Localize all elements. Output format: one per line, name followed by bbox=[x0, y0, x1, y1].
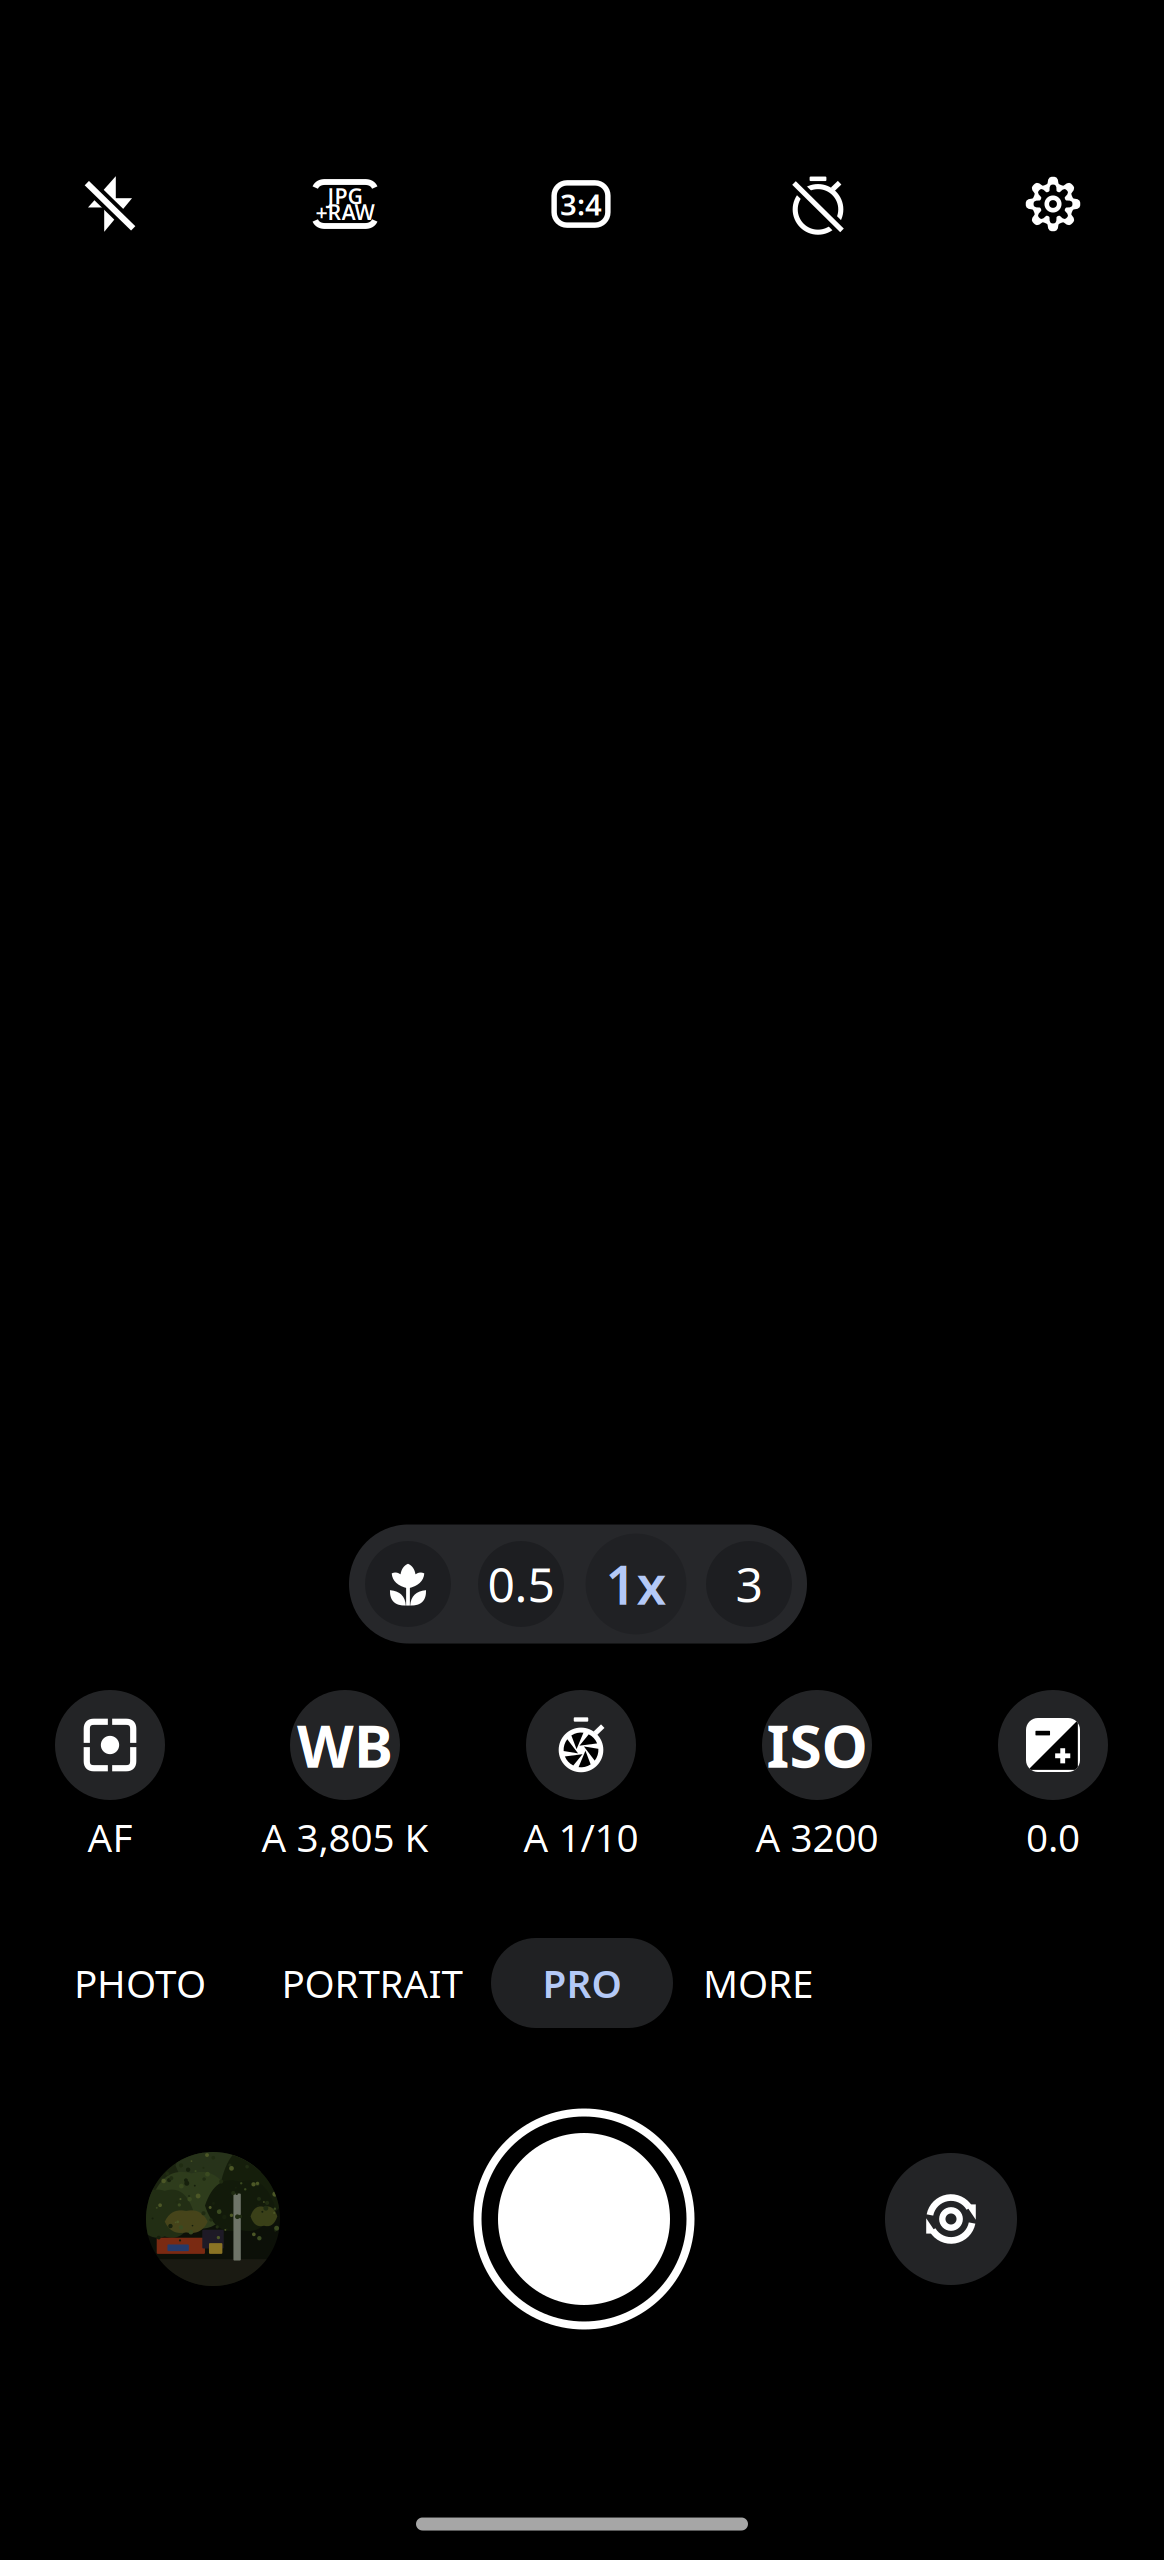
button[interactable]: Shutter bbox=[477, 2112, 690, 2325]
staticText: WB bbox=[297, 1706, 393, 1784]
staticText: 0.5 bbox=[487, 1552, 554, 1616]
button[interactable]: Timer off bbox=[758, 149, 878, 259]
staticText: 3 bbox=[735, 1552, 762, 1616]
button[interactable]: Last photo bbox=[146, 2152, 280, 2286]
button[interactable]: Switch camera bbox=[885, 2153, 1017, 2285]
staticText: PORTRAIT bbox=[281, 1957, 462, 2009]
button[interactable]: Aspect ratio 3 by 4 bbox=[521, 149, 641, 259]
button[interactable]: PHOTO bbox=[40, 1952, 240, 2014]
button[interactable]: AF bbox=[0, 1690, 225, 1870]
button[interactable]: A 1/10 bbox=[466, 1690, 696, 1870]
staticText: 3:4 bbox=[560, 184, 602, 223]
staticText: JPG bbox=[327, 182, 362, 210]
button[interactable]: ISO bbox=[702, 1690, 932, 1870]
button[interactable]: 0.0 bbox=[938, 1690, 1164, 1870]
staticText: PRO bbox=[542, 1957, 621, 2009]
button[interactable]: 1x bbox=[578, 1532, 694, 1635]
button[interactable]: Flash off bbox=[50, 149, 170, 259]
staticText: 1x bbox=[605, 1549, 666, 1619]
staticText: +RAW bbox=[315, 198, 374, 226]
button[interactable]: WB bbox=[230, 1690, 460, 1870]
staticText: MORE bbox=[703, 1957, 813, 2009]
button[interactable]: Macro bbox=[352, 1532, 464, 1635]
staticText: PHOTO bbox=[74, 1957, 206, 2009]
staticText: AF bbox=[87, 1811, 132, 1863]
button[interactable]: Settings bbox=[993, 149, 1113, 259]
staticText: A 1/10 bbox=[523, 1811, 638, 1863]
button[interactable]: JPG plus RAW bbox=[285, 149, 405, 259]
staticText: A 3200 bbox=[755, 1811, 878, 1863]
staticText: 0.0 bbox=[1026, 1811, 1080, 1863]
button[interactable]: 3 bbox=[694, 1532, 804, 1635]
button[interactable]: PORTRAIT bbox=[232, 1952, 512, 2014]
button[interactable]: PRO bbox=[491, 1938, 673, 2028]
button[interactable]: 0.5 bbox=[464, 1532, 578, 1635]
staticText: A 3,805 K bbox=[261, 1811, 428, 1863]
button[interactable]: MORE bbox=[658, 1952, 858, 2014]
staticText: ISO bbox=[766, 1706, 867, 1784]
